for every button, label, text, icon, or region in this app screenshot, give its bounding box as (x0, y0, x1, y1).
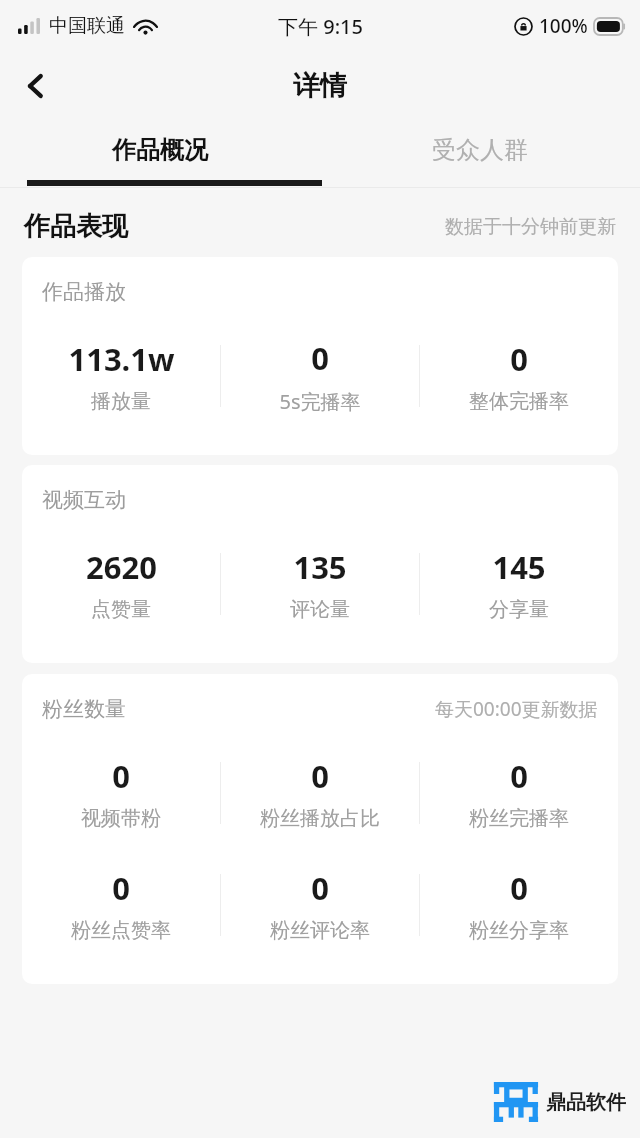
staticText: 0 (510, 755, 528, 797)
staticText: 每天00:00更新数据 (435, 696, 598, 722)
staticText: 0 (112, 755, 130, 797)
staticText: 分享量 (489, 597, 549, 622)
staticText: 中国联通 (49, 14, 125, 38)
staticText: 评论量 (290, 597, 350, 622)
button[interactable]: 粉丝数量 (22, 674, 618, 984)
button[interactable]: 返回 (10, 60, 62, 112)
staticText: 播放量 (91, 389, 151, 414)
staticText: 0 (510, 867, 528, 909)
staticText: 100% (539, 13, 588, 39)
staticText: 0 (311, 337, 329, 379)
staticText: 受众人群 (432, 135, 528, 165)
staticText: 135 (293, 546, 347, 588)
staticText: 粉丝点赞率 (71, 918, 171, 943)
staticText: 作品表现 (24, 210, 128, 243)
staticText: 145 (492, 546, 546, 588)
staticText: 粉丝播放占比 (260, 806, 380, 831)
staticText: 整体完播率 (469, 389, 569, 414)
staticText: 0 (112, 867, 130, 909)
staticText: 粉丝分享率 (469, 918, 569, 943)
staticText: 0 (311, 867, 329, 909)
button[interactable]: 作品概况 (0, 120, 320, 180)
staticText: 粉丝评论率 (270, 918, 370, 943)
button[interactable]: 视频互动 (22, 465, 618, 663)
staticText: 详情 (293, 69, 347, 103)
staticText: 作品播放 (42, 279, 126, 305)
button[interactable]: 受众人群 (320, 120, 640, 180)
staticText: 粉丝数量 (42, 696, 126, 722)
staticText: 5s完播率 (279, 388, 361, 415)
staticText: 鼎品软件 (546, 1090, 626, 1115)
staticText: 数据于十分钟前更新 (445, 215, 616, 239)
staticText: 2620 (86, 546, 157, 588)
staticText: 视频带粉 (81, 806, 161, 831)
staticText: 视频互动 (42, 487, 126, 513)
staticText: 0 (311, 755, 329, 797)
staticText: 下午 9:15 (278, 13, 363, 40)
staticText: 点赞量 (91, 597, 151, 622)
button[interactable]: 作品播放 (22, 257, 618, 455)
staticText: 作品概况 (112, 135, 208, 165)
staticText: 0 (510, 338, 528, 380)
staticText: 粉丝完播率 (469, 806, 569, 831)
staticText: 113.1w (68, 338, 175, 380)
